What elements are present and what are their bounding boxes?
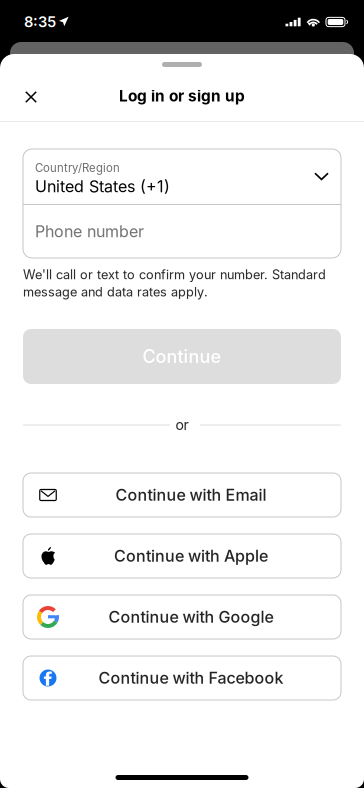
staticText: Phone number <box>35 222 144 241</box>
staticText: United States (+1) <box>35 177 170 196</box>
staticText: message and data rates apply. <box>23 284 208 300</box>
button[interactable]: Continue with Apple <box>23 534 341 578</box>
button[interactable]: Continue <box>23 329 341 384</box>
staticText: Continue with Facebook <box>98 668 283 688</box>
staticText: Continue with Apple <box>114 546 268 566</box>
staticText: Continue with Google <box>108 607 273 627</box>
staticText: We'll call or text to confirm your numbe… <box>23 267 326 282</box>
staticText: 8:35 <box>24 13 56 31</box>
staticText: or <box>175 416 188 433</box>
button[interactable]: Country/Region <box>23 149 341 204</box>
button[interactable]: Phone number <box>23 205 341 258</box>
button[interactable]: Continue with Email <box>23 473 341 517</box>
button[interactable]: Continue with Google <box>23 595 341 639</box>
staticText: Continue <box>142 346 221 367</box>
button[interactable]: Continue with Facebook <box>23 656 341 700</box>
staticText: Continue with Email <box>115 485 266 505</box>
staticText: Log in or sign up <box>119 87 245 105</box>
staticText: Country/Region <box>35 161 120 175</box>
button[interactable]: Close <box>9 75 53 119</box>
